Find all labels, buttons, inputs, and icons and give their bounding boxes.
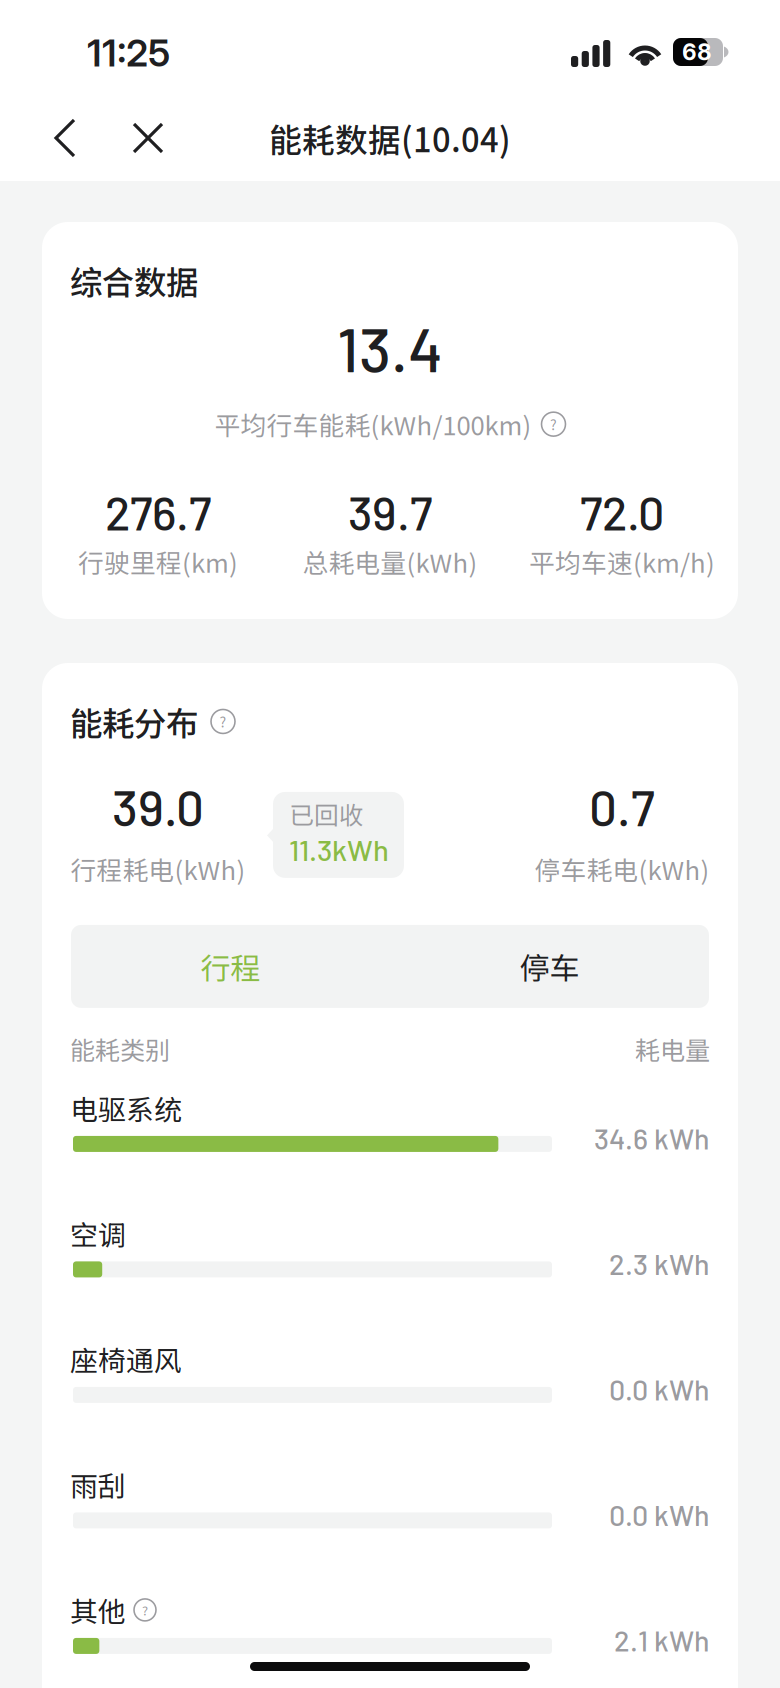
- staticText: 其他: [70, 1590, 126, 1630]
- button[interactable]: Back: [36, 105, 94, 171]
- staticText: 座椅通风: [70, 1339, 182, 1379]
- staticText: 平均车速(km/h): [529, 543, 715, 580]
- button[interactable]: 行程: [71, 925, 390, 1008]
- staticText: 72.0: [580, 484, 664, 540]
- staticText: 行程耗电(kWh): [70, 850, 245, 887]
- staticText: 平均行车能耗(kWh/100km): [214, 405, 531, 443]
- staticText: 电驱系统: [70, 1088, 182, 1128]
- staticText: 耗电量: [635, 1031, 710, 1067]
- staticText: ?: [550, 414, 557, 434]
- staticText: 0.0 kWh: [609, 1372, 710, 1406]
- staticText: 0.7: [589, 777, 655, 836]
- staticText: 68: [682, 38, 712, 66]
- staticText: 39.7: [348, 484, 432, 540]
- staticText: 276.7: [105, 484, 211, 540]
- staticText: ?: [142, 1601, 148, 1619]
- staticText: 0.0 kWh: [609, 1497, 710, 1532]
- staticText: 39.0: [112, 777, 204, 836]
- staticText: 总耗电量(kWh): [302, 543, 477, 580]
- staticText: 2.3 kWh: [609, 1246, 710, 1281]
- staticText: 能耗分布: [70, 698, 198, 745]
- button[interactable]: 停车: [390, 925, 709, 1008]
- staticText: 34.6 kWh: [594, 1121, 710, 1155]
- staticText: 综合数据: [70, 257, 198, 304]
- staticText: 13.4: [337, 311, 443, 384]
- staticText: 行驶里程(km): [78, 543, 238, 580]
- staticText: 11.3kWh: [289, 832, 389, 867]
- staticText: ?: [219, 711, 226, 732]
- staticText: 2.1 kWh: [614, 1623, 710, 1657]
- staticText: 停车: [519, 945, 579, 988]
- staticText: 能耗数据(10.04): [269, 114, 511, 162]
- staticText: 空调: [70, 1213, 126, 1253]
- staticText: 停车耗电(kWh): [534, 850, 709, 887]
- staticText: 已回收: [289, 796, 364, 832]
- staticText: 雨刮: [70, 1464, 126, 1504]
- staticText: 行程: [200, 945, 260, 988]
- staticText: 能耗类别: [70, 1031, 170, 1067]
- button[interactable]: Close: [119, 105, 177, 171]
- staticText: 11:25: [87, 30, 170, 76]
